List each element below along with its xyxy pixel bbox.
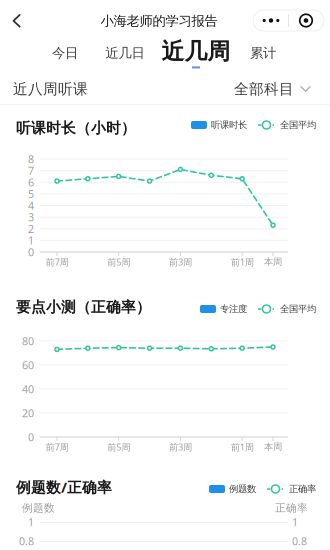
- staticText: 专注度: [220, 303, 247, 315]
- button[interactable]: 返回: [0, 6, 35, 36]
- staticText: 正确率: [289, 483, 316, 495]
- staticText: 例题数/正确率: [16, 477, 112, 497]
- staticText: 本周: [264, 256, 282, 268]
- button[interactable]: 近几日: [102, 42, 148, 64]
- staticText: 近八周听课: [13, 80, 88, 98]
- staticText: 前7周: [45, 256, 68, 268]
- button[interactable]: 关闭: [289, 10, 323, 31]
- button[interactable]: 今日: [45, 42, 85, 64]
- staticText: 0.8: [19, 534, 34, 548]
- staticText: 小海老师的学习报告: [100, 13, 217, 29]
- staticText: 8: [28, 152, 34, 166]
- staticText: 1: [28, 233, 34, 247]
- button[interactable]: 全部科目: [227, 79, 311, 99]
- staticText: 前7周: [45, 441, 68, 453]
- staticText: 前5周: [107, 256, 130, 268]
- staticText: 前3周: [169, 441, 192, 453]
- staticText: 0: [28, 245, 34, 259]
- staticText: 0: [28, 430, 34, 444]
- staticText: 2: [28, 222, 34, 236]
- staticText: 1: [292, 515, 298, 529]
- staticText: 听课时长（小时）: [16, 119, 136, 137]
- staticText: 前5周: [107, 441, 130, 453]
- staticText: 3: [28, 210, 34, 224]
- staticText: 7: [28, 163, 34, 178]
- staticText: 4: [28, 198, 34, 213]
- staticText: 听课时长: [211, 119, 247, 131]
- staticText: 正确率: [275, 501, 308, 514]
- staticText: 前1周: [231, 256, 254, 268]
- staticText: 0.8: [292, 534, 307, 548]
- staticText: 60: [22, 358, 34, 372]
- staticText: 本周: [264, 441, 282, 453]
- staticText: 要点小测（正确率）: [16, 298, 151, 316]
- button[interactable]: 近几周: [160, 39, 232, 67]
- staticText: 今日: [52, 45, 78, 61]
- button[interactable]: 累计: [246, 42, 280, 64]
- staticText: 5: [28, 187, 34, 201]
- staticText: 近几周: [161, 38, 230, 65]
- staticText: 例题数: [229, 483, 256, 495]
- staticText: 80: [22, 334, 34, 348]
- staticText: 全国平均: [280, 303, 316, 315]
- staticText: 前1周: [231, 441, 254, 453]
- staticText: 全国平均: [280, 119, 316, 131]
- staticText: 6: [28, 175, 34, 189]
- staticText: 近几日: [105, 45, 144, 61]
- staticText: 1: [28, 515, 34, 529]
- staticText: 前3周: [169, 256, 192, 268]
- staticText: 累计: [250, 45, 276, 61]
- staticText: 20: [22, 406, 34, 420]
- button[interactable]: 更多: [254, 10, 288, 31]
- staticText: 例题数: [22, 501, 55, 514]
- staticText: 全部科目: [234, 80, 294, 98]
- staticText: 40: [22, 382, 34, 396]
